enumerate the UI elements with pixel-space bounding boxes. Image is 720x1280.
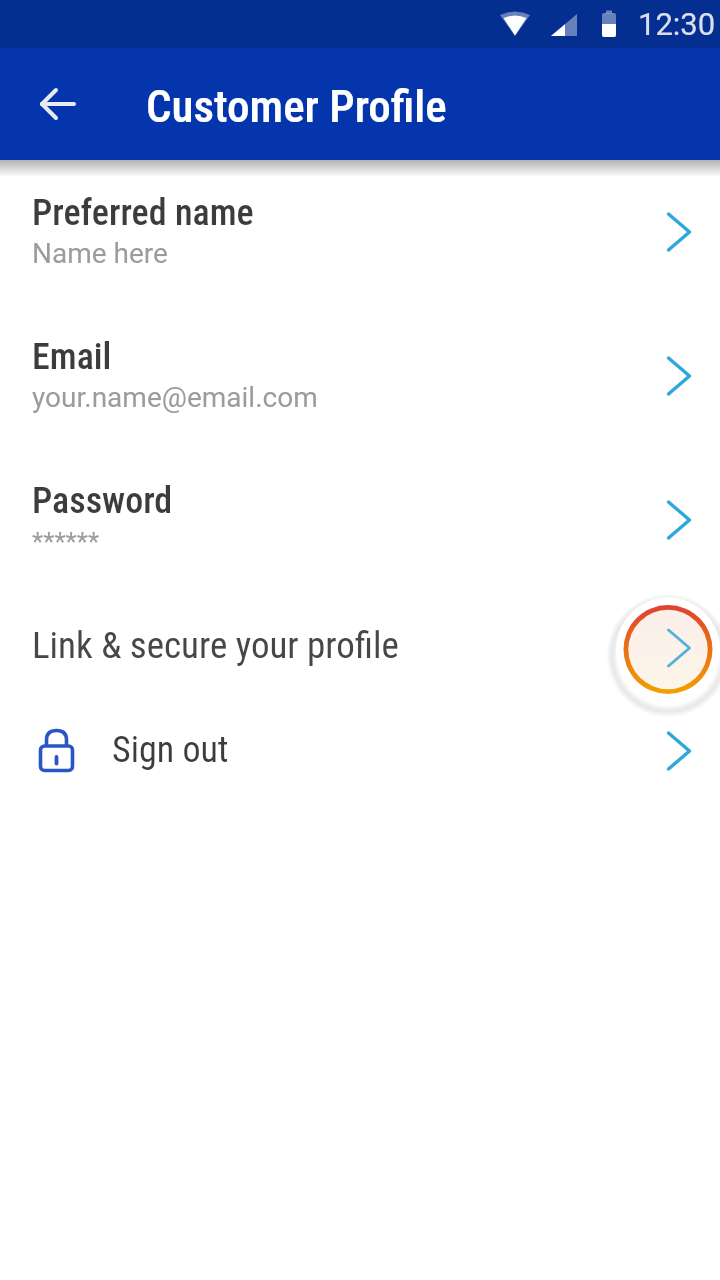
staticText: Name here <box>32 237 168 270</box>
staticText: 12:30 <box>638 6 716 42</box>
staticText: Link & secure your profile <box>32 624 399 667</box>
staticText: your.name@email.com <box>32 381 318 414</box>
staticText: Password <box>32 480 173 522</box>
staticText: Preferred name <box>32 192 254 234</box>
staticText: Customer Profile <box>146 80 447 133</box>
staticText: Email <box>32 336 112 378</box>
staticText: ****** <box>32 527 100 557</box>
staticText: Sign out <box>112 729 229 771</box>
